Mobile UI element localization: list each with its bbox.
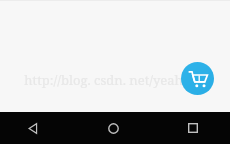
button[interactable]: Home [97, 112, 129, 144]
staticText: http://blog. csdn. net/yeahyou [0, 71, 230, 89]
button[interactable]: Recent apps [177, 112, 209, 144]
button[interactable]: Add to cart [181, 62, 214, 95]
button[interactable]: Back [17, 112, 49, 144]
